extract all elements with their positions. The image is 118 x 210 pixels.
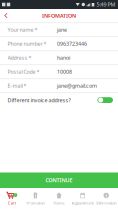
staticText: 0963723446 <box>57 40 87 47</box>
button[interactable]: CONTINUE <box>0 172 118 188</box>
staticText: 10008 <box>57 68 72 75</box>
staticText: 1 <box>14 193 16 197</box>
staticText: Cart <box>8 200 16 206</box>
staticText: Postal Code * <box>7 68 39 75</box>
staticText: jane@gmail.com <box>57 82 97 89</box>
button[interactable]: Different invoice address <box>97 97 113 103</box>
staticText: 5:49 PM <box>96 1 115 8</box>
staticText: Promotion <box>26 200 44 206</box>
staticText: hanoi <box>57 54 70 61</box>
button[interactable]: Information <box>94 188 118 210</box>
staticText: CONTINUE <box>45 177 72 184</box>
staticText: jane <box>57 26 67 33</box>
staticText: E-mail * <box>7 82 26 89</box>
staticText: Phone number * <box>7 40 46 47</box>
staticText: Address * <box>7 54 31 61</box>
button[interactable]: Promotion <box>24 188 47 210</box>
staticText: Information <box>96 200 116 206</box>
staticText: Different invoice address? <box>7 97 70 104</box>
staticText: Your name * <box>7 26 37 33</box>
staticText: Appointment <box>72 200 94 206</box>
staticText: Home <box>53 200 64 206</box>
button[interactable]: Appointment <box>71 188 94 210</box>
button[interactable]: Home <box>47 188 71 210</box>
button[interactable]: 1 <box>0 188 24 210</box>
button[interactable]: Back <box>0 9 13 22</box>
staticText: INFOMATION <box>42 12 76 19</box>
